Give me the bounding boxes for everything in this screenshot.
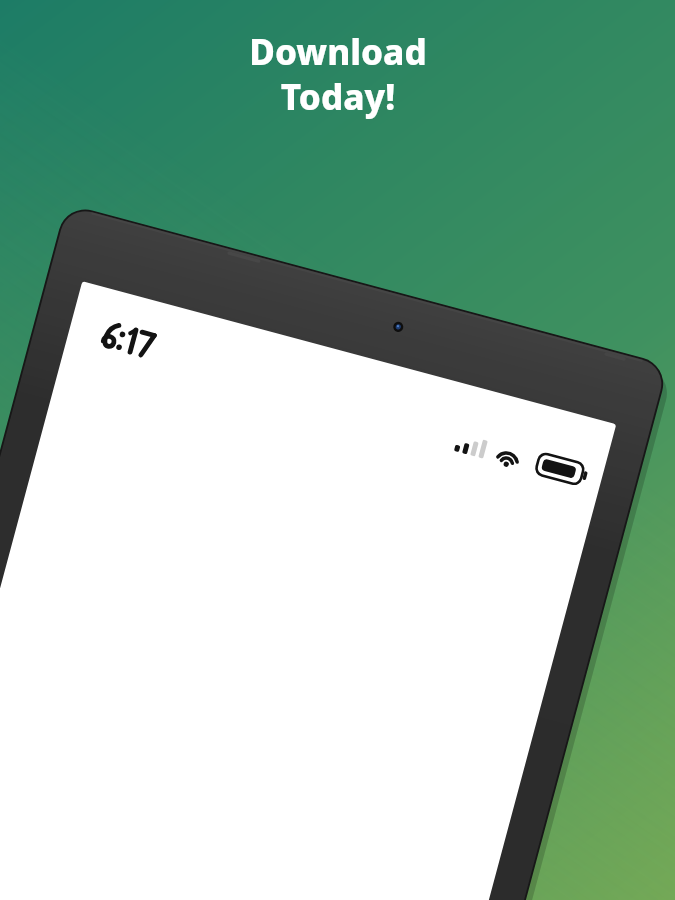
staticText: Download Today! <box>123 28 553 121</box>
button[interactable]: Download Today! <box>123 28 553 121</box>
